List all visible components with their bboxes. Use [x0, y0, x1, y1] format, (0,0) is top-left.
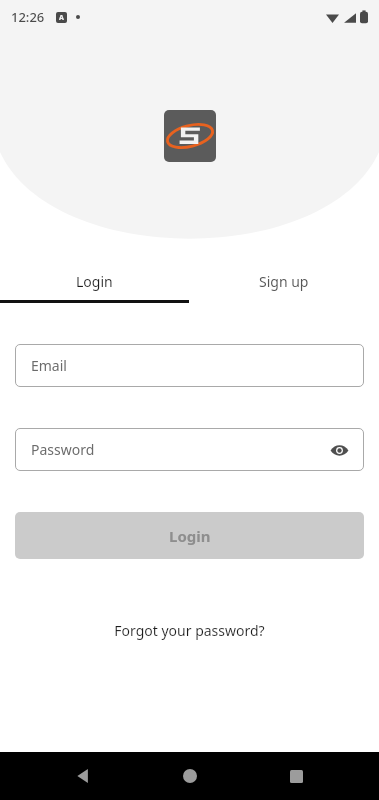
button[interactable]: Login: [0, 263, 189, 300]
staticText: Email: [31, 356, 67, 375]
staticText: Login: [169, 526, 211, 546]
button[interactable]: Back: [59, 752, 107, 800]
button[interactable]: Recent apps: [272, 752, 320, 800]
button[interactable]: Show password: [322, 433, 356, 467]
button[interactable]: Home: [166, 752, 214, 800]
staticText: A: [59, 13, 64, 23]
button[interactable]: Password: [15, 428, 364, 471]
staticText: Login: [76, 272, 113, 291]
staticText: 12:26: [11, 8, 45, 26]
staticText: Sign up: [259, 272, 309, 291]
button[interactable]: Login: [15, 512, 364, 559]
button[interactable]: Email: [15, 344, 364, 387]
button[interactable]: Forgot your password?: [102, 615, 277, 646]
button[interactable]: Sign up: [189, 263, 379, 300]
staticText: Password: [31, 440, 95, 459]
